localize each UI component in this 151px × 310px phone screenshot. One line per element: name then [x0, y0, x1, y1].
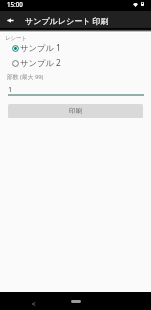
staticText: レシート [5, 35, 27, 42]
staticText: 印刷 [69, 107, 82, 115]
button[interactable]: サンプル 1 [0, 41, 151, 55]
button[interactable]: サンプル 2 [0, 56, 151, 70]
button[interactable]: Home [71, 300, 81, 303]
staticText: サンプル 1 [20, 42, 61, 53]
button[interactable]: 印刷 [8, 104, 143, 118]
staticText: 1 [8, 84, 13, 94]
staticText: サンプルレシート 印刷 [25, 15, 109, 26]
button[interactable]: Back [2, 12, 19, 29]
staticText: 部数 (最大 99) [7, 73, 44, 81]
button[interactable]: Back [28, 298, 39, 309]
staticText: サンプル 2 [20, 57, 61, 68]
staticText: 15:00 [7, 0, 23, 8]
